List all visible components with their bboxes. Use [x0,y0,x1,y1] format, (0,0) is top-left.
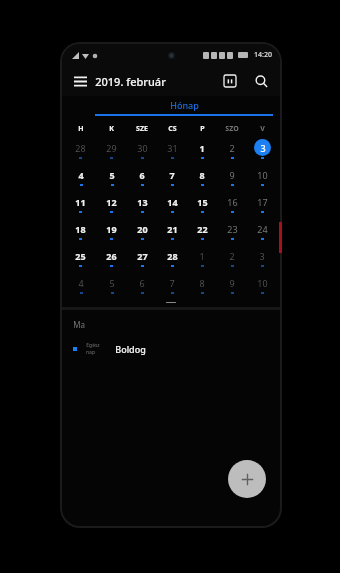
button[interactable]: 28 [65,136,96,163]
button[interactable]: 17 [247,190,277,217]
button[interactable]: 30 [127,136,157,163]
button[interactable]: 5 [96,271,127,298]
button[interactable]: 15 [187,190,217,217]
staticText: 11 [75,196,86,208]
button[interactable]: 6 [127,271,157,298]
staticText: 23 [227,223,238,235]
staticText: 2019. február [95,74,166,89]
staticText: 2 [229,142,235,154]
button[interactable]: 10 [247,271,277,298]
button[interactable]: Egész [62,339,280,359]
staticText: 25 [75,250,86,262]
staticText: H [78,124,84,134]
staticText: 4 [78,169,84,181]
button[interactable]: Hónap [95,96,273,116]
button[interactable]: 4 [65,163,96,190]
button[interactable]: 2 [217,136,247,163]
button[interactable]: Create new event [228,460,266,498]
button[interactable]: 8 [187,163,217,190]
button[interactable]: 4 [65,271,96,298]
button[interactable]: 5 [96,163,127,190]
button[interactable]: 1 [187,244,217,271]
staticText: 13 [137,196,148,208]
button[interactable]: 14 [157,190,187,217]
staticText: 7 [169,277,175,289]
staticText: 14:20 [254,50,272,60]
button[interactable]: 13 [127,190,157,217]
staticText: 17 [257,196,268,208]
button[interactable]: 25 [65,244,96,271]
button[interactable]: Jump to today [220,71,240,91]
staticText: 28 [167,250,178,262]
staticText: V [260,124,265,134]
staticText: 12 [106,196,117,208]
staticText: 14 [167,196,178,208]
staticText: SZO [225,124,239,134]
staticText: 3 [259,250,265,262]
staticText: 1 [199,250,205,262]
button[interactable]: 20 [127,217,157,244]
button[interactable]: 7 [157,163,187,190]
button[interactable]: 11 [65,190,96,217]
staticText: Boldog [115,343,146,355]
button[interactable]: 12 [96,190,127,217]
staticText: 9 [229,169,235,181]
staticText: 6 [139,169,145,181]
button[interactable]: 16 [217,190,247,217]
staticText: 4 [78,277,84,289]
button[interactable]: 10 [247,163,277,190]
staticText: Egész [86,342,100,349]
staticText: nap [86,349,95,356]
staticText: 10 [257,277,268,289]
staticText: 6 [139,277,145,289]
button[interactable]: 26 [96,244,127,271]
staticText: 2 [229,250,235,262]
staticText: K [109,124,114,134]
button[interactable]: 3 [247,244,277,271]
staticText: 29 [106,142,117,154]
staticText: 5 [109,169,115,181]
button[interactable]: 9 [217,163,247,190]
button[interactable]: 27 [127,244,157,271]
button[interactable]: 3 [247,136,277,163]
staticText: 26 [106,250,117,262]
staticText: SZE [136,124,148,134]
staticText: 3 [260,142,266,154]
staticText: 28 [75,142,86,154]
staticText: P [200,124,205,134]
staticText: 16 [227,196,238,208]
button[interactable]: 18 [65,217,96,244]
staticText: 21 [167,223,178,235]
staticText: Hónap [170,99,199,111]
button[interactable]: 9 [217,271,247,298]
button[interactable]: 7 [157,271,187,298]
button[interactable]: 2 [217,244,247,271]
staticText: 18 [75,223,86,235]
staticText: CS [168,124,177,134]
button[interactable]: 21 [157,217,187,244]
staticText: 20 [137,223,148,235]
button[interactable]: 22 [187,217,217,244]
button[interactable]: Open navigation menu [69,70,91,92]
staticText: 7 [169,169,175,181]
staticText: 1 [199,142,205,154]
staticText: 24 [257,223,268,235]
button[interactable]: 31 [157,136,187,163]
button[interactable]: Search [251,71,271,91]
button[interactable]: 24 [247,217,277,244]
button[interactable]: 23 [217,217,247,244]
staticText: 8 [199,277,205,289]
button[interactable]: 29 [96,136,127,163]
staticText: 8 [199,169,205,181]
staticText: 22 [197,223,208,235]
button[interactable]: 19 [96,217,127,244]
staticText: 30 [137,142,148,154]
staticText: 15 [197,196,208,208]
staticText: 9 [229,277,235,289]
button[interactable]: 6 [127,163,157,190]
button[interactable]: 28 [157,244,187,271]
button[interactable]: 8 [187,271,217,298]
staticText: 31 [167,142,178,154]
staticText: 10 [257,169,268,181]
button[interactable]: 1 [187,136,217,163]
